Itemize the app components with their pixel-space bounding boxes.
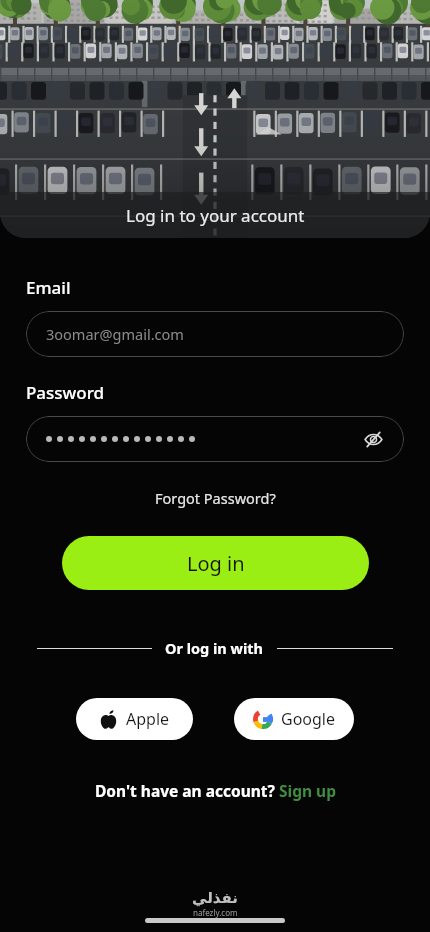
button[interactable]: Google	[234, 698, 354, 740]
staticText: nafezly.com	[193, 907, 238, 918]
staticText: Password	[26, 381, 105, 404]
staticText: Forgot Password?	[155, 488, 276, 508]
button[interactable]: Show password	[358, 424, 388, 454]
staticText: Apple	[126, 708, 170, 730]
staticText: Log in	[187, 550, 245, 577]
staticText: Google	[281, 708, 336, 730]
staticText: Email	[26, 276, 71, 299]
staticText: Or log in with	[165, 638, 264, 658]
staticText: 3oomar@gmail.com	[46, 324, 184, 344]
button[interactable]: Sign up	[279, 780, 336, 801]
staticText: نفذلي	[192, 889, 238, 906]
button[interactable]: 3oomar@gmail.com	[26, 311, 404, 357]
staticText: Don't have an account?	[95, 780, 279, 801]
staticText: Log in to your account	[126, 204, 305, 227]
button[interactable]: Forgot Password?	[145, 484, 286, 512]
button[interactable]: Show password	[26, 416, 404, 462]
button[interactable]: Apple	[76, 698, 193, 740]
button[interactable]: Log in	[62, 536, 369, 590]
staticText: Sign up	[279, 780, 336, 801]
